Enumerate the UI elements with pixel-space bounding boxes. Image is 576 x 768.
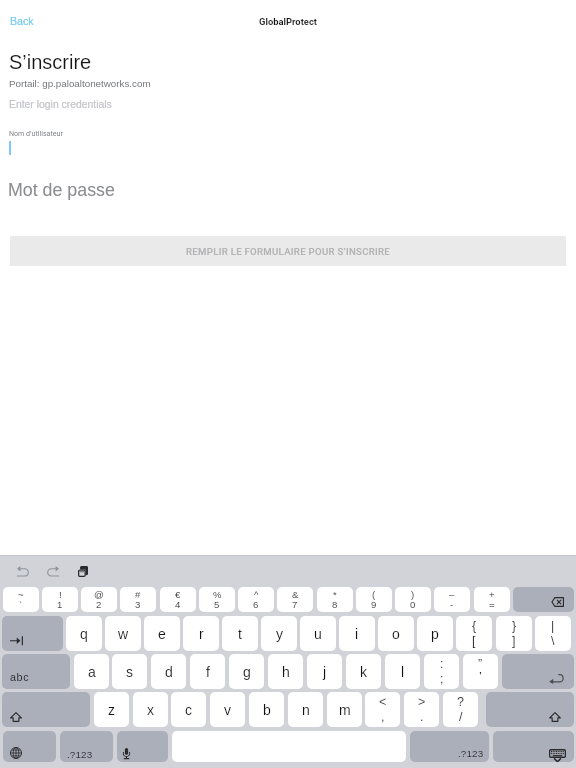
button[interactable]: o [378,616,414,651]
button[interactable]: x [133,692,168,727]
button[interactable]: ” [463,654,498,689]
button[interactable]: ( [356,587,392,612]
button[interactable]: Paste [68,558,98,584]
button[interactable]: r [183,616,219,651]
staticText: l [401,664,405,680]
button[interactable]: Tab [2,616,63,651]
staticText: & [292,589,299,600]
staticText: o [392,626,400,642]
button[interactable]: ? [443,692,478,727]
button[interactable]: Hide keyboard [493,731,574,762]
button[interactable]: u [300,616,336,651]
button[interactable]: Back [3,10,41,32]
button[interactable]: t [222,616,258,651]
button[interactable]: h [268,654,303,689]
staticText: , [381,710,385,724]
button[interactable]: .?123 [410,731,489,762]
button[interactable]: c [171,692,206,727]
staticText: ~ [18,589,24,600]
button[interactable]: g [229,654,264,689]
button[interactable]: p [417,616,453,651]
staticText: Nom d’utilisateur [9,129,63,137]
staticText: 9 [371,599,377,610]
button[interactable]: i [339,616,375,651]
staticText: t [238,626,242,642]
button[interactable]: – [434,587,470,612]
staticText: { [472,619,477,633]
button[interactable]: v [210,692,245,727]
button[interactable]: * [317,587,353,612]
button[interactable]: Next keyboard [3,731,56,762]
button[interactable]: a [74,654,109,689]
button[interactable]: : [424,654,459,689]
button[interactable]: { [456,616,492,651]
button[interactable]: Return [502,654,574,689]
button[interactable]: Redo [38,558,68,584]
staticText: | [551,619,555,633]
button[interactable]: ^ [238,587,274,612]
staticText: ) [411,589,415,600]
staticText: REMPLIR LE FORMULAIRE POUR S’INSCRIRE [186,246,391,257]
button[interactable]: j [307,654,342,689]
staticText: a [88,664,96,680]
button[interactable]: @ [81,587,117,612]
button[interactable]: Shift [486,692,574,727]
button[interactable]: < [365,692,400,727]
staticText: 3 [135,599,141,610]
button[interactable]: & [277,587,313,612]
button[interactable]: abc [2,654,70,689]
button[interactable]: } [496,616,532,651]
button[interactable]: Shift [2,692,90,727]
staticText: e [158,626,166,642]
button[interactable]: n [288,692,323,727]
staticText: 4 [175,599,181,610]
staticText: n [302,702,310,718]
button[interactable]: Undo [8,558,38,584]
staticText: Enter login credentials [9,99,112,111]
staticText: # [135,589,141,600]
button[interactable]: k [346,654,381,689]
button[interactable]: s [112,654,147,689]
staticText: 6 [253,599,259,610]
button[interactable]: y [261,616,297,651]
staticText: f [206,664,210,680]
staticText: k [360,664,367,680]
staticText: u [314,626,322,642]
staticText: \ [551,634,555,648]
staticText: j [323,664,327,680]
button[interactable]: # [120,587,156,612]
button[interactable]: l [385,654,420,689]
staticText: m [339,702,351,718]
button[interactable]: f [190,654,225,689]
button[interactable]: b [249,692,284,727]
button[interactable]: Dictate [117,731,168,762]
staticText: q [80,626,88,642]
button[interactable]: Mot de passe [0,170,576,208]
button[interactable]: d [151,654,186,689]
staticText: r [199,626,204,642]
staticText: s [126,664,133,680]
staticText: x [147,702,154,718]
button[interactable]: REMPLIR LE FORMULAIRE POUR S’INSCRIRE [10,236,566,266]
button[interactable]: z [94,692,129,727]
staticText: + [489,589,495,600]
button[interactable]: w [105,616,141,651]
button[interactable]: m [327,692,362,727]
button[interactable]: Delete [513,587,574,612]
button[interactable]: .?123 [60,731,113,762]
button[interactable]: q [66,616,102,651]
button[interactable]: | [535,616,571,651]
button[interactable]: Nom d’utilisateur [0,124,576,162]
staticText: 5 [214,599,220,610]
button[interactable]: € [160,587,196,612]
button[interactable]: > [404,692,439,727]
button[interactable]: + [474,587,510,612]
button[interactable]: e [144,616,180,651]
staticText: [ [472,634,476,648]
button[interactable]: % [199,587,235,612]
button[interactable]: ) [395,587,431,612]
staticText: ] [512,634,516,648]
button[interactable]: ! [42,587,78,612]
button[interactable]: ~ [3,587,39,612]
